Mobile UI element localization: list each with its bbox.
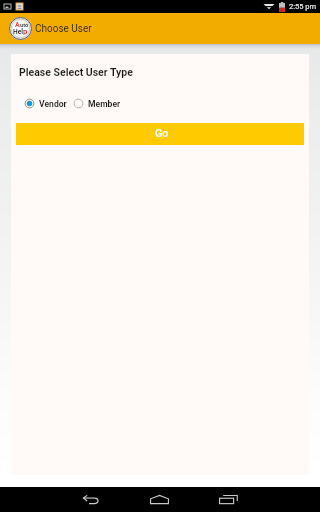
staticText: Go bbox=[155, 127, 169, 139]
staticText: p bbox=[23, 27, 28, 36]
staticText: Member bbox=[88, 99, 121, 109]
button[interactable]: Home bbox=[125, 487, 194, 512]
button[interactable]: Go bbox=[16, 123, 304, 145]
staticText: Please Select User Type bbox=[19, 66, 133, 78]
staticText: Hel bbox=[13, 28, 23, 36]
staticText: A bbox=[15, 21, 20, 29]
staticText: Vendor bbox=[39, 99, 67, 109]
button[interactable]: Recents bbox=[194, 487, 263, 512]
button[interactable]: Back bbox=[56, 487, 125, 512]
button[interactable]: Vendor bbox=[24, 98, 67, 109]
staticText: 2:55 pm bbox=[289, 2, 317, 11]
button[interactable]: Member bbox=[73, 98, 121, 109]
staticText: Choose User bbox=[35, 23, 92, 35]
staticText: uto bbox=[20, 22, 29, 29]
